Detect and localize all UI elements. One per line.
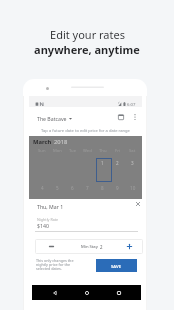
staticText: 9 [116,185,119,191]
staticText: Edit your rates [50,27,125,42]
button[interactable]: The Batcave [37,115,72,122]
staticText: Thu [99,148,107,154]
button[interactable]: Thursday March 1 selected [96,158,112,182]
staticText: 4 [41,185,44,191]
staticText: 5 [56,185,59,191]
staticText: Fri [115,148,120,154]
staticText: 3 [131,160,134,166]
staticText: Tap a future date to edit price for a da… [41,128,130,134]
staticText: 6 [71,185,74,191]
button[interactable]: Increase minimum stay [121,239,138,254]
staticText: Wed [83,148,92,154]
button[interactable]: Recent apps [112,285,125,300]
button[interactable]: Decrease minimum stay [43,239,60,254]
staticText: 8 [101,185,104,191]
staticText: March [33,138,52,146]
staticText: anywhere, anytime [34,42,140,57]
staticText: The Batcave [37,115,67,122]
staticText: Tue [69,148,77,154]
staticText: 7 [86,185,89,191]
staticText: 2018 [54,138,68,146]
button[interactable]: More options [129,111,141,123]
staticText: Sun [38,148,46,154]
button[interactable]: Back [48,285,61,300]
staticText: 6:07 [127,101,136,106]
staticText: Sat [129,148,136,154]
staticText: 2 [116,160,119,166]
staticText: 2 [100,244,103,250]
button[interactable]: Jump to date [115,111,127,123]
button[interactable]: Close [131,197,144,210]
staticText: $140 [37,222,49,229]
staticText: Nightly Rate [37,217,59,222]
staticText: 10 [130,185,136,191]
staticText: Thu, Mar 1 [37,203,64,210]
button[interactable]: Home [80,285,93,300]
staticText: Min Stay [81,244,98,250]
staticText: This only changes the nightly price for … [36,258,80,272]
button[interactable]: SAVE [96,259,137,272]
staticText: Mon [53,148,62,154]
staticText: SAVE [111,263,122,269]
staticText: 1 [101,160,104,166]
